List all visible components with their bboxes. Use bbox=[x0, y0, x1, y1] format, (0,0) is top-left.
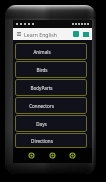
button[interactable]: Dictionary bbox=[71, 29, 81, 39]
button[interactable]: Birds bbox=[15, 61, 87, 78]
staticText: Days bbox=[36, 121, 47, 127]
staticText: Learn English bbox=[24, 31, 57, 38]
button[interactable]: BodyParts bbox=[15, 79, 87, 96]
staticText: Directions bbox=[31, 138, 53, 144]
button[interactable]: Settings bbox=[67, 150, 78, 161]
button[interactable]: Menu bbox=[15, 30, 23, 38]
button[interactable]: Animals bbox=[15, 43, 87, 60]
button[interactable]: Home bbox=[26, 150, 37, 161]
staticText: Birds bbox=[36, 67, 48, 73]
button[interactable]: Connectors bbox=[15, 97, 87, 114]
staticText: Animals bbox=[33, 49, 51, 55]
button[interactable]: Favorites bbox=[47, 150, 58, 161]
button[interactable]: Days bbox=[15, 115, 87, 132]
button[interactable]: Directions bbox=[15, 133, 87, 148]
button[interactable]: Mail bbox=[81, 29, 91, 39]
staticText: BodyParts bbox=[30, 85, 53, 91]
staticText: Connectors bbox=[29, 103, 54, 109]
